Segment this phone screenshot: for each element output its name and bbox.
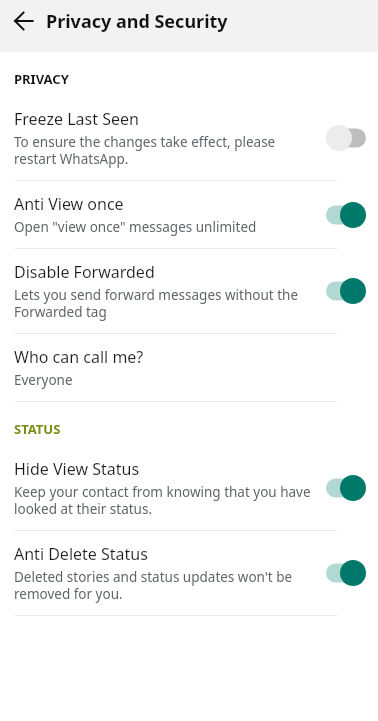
staticText: STATUS xyxy=(14,420,61,438)
button[interactable] xyxy=(326,202,366,228)
button[interactable] xyxy=(326,560,366,586)
button[interactable] xyxy=(326,125,366,151)
staticText: Open "view once" messages unlimited xyxy=(14,218,257,236)
staticText: Lets you send forward messages without t… xyxy=(14,286,318,321)
button[interactable]: Back xyxy=(2,0,44,42)
staticText: Anti View once xyxy=(14,193,124,215)
staticText: Privacy and Security xyxy=(46,9,228,34)
staticText: PRIVACY xyxy=(14,70,69,88)
staticText: Who can call me? xyxy=(14,346,144,368)
staticText: To ensure the changes take effect, pleas… xyxy=(14,133,318,168)
button[interactable]: Anti View once xyxy=(0,181,378,249)
button[interactable]: Anti Delete Status xyxy=(0,531,378,616)
button[interactable] xyxy=(326,278,366,304)
staticText: Deleted stories and status updates won't… xyxy=(14,568,318,603)
staticText: Everyone xyxy=(14,371,73,389)
button[interactable] xyxy=(326,475,366,501)
button[interactable]: Disable Forwarded xyxy=(0,249,378,334)
button[interactable]: Hide View Status xyxy=(0,446,378,531)
staticText: Hide View Status xyxy=(14,458,140,480)
staticText: Keep your contact from knowing that you … xyxy=(14,483,318,518)
button[interactable]: Freeze Last Seen xyxy=(0,96,378,181)
button[interactable]: Who can call me? xyxy=(0,334,378,402)
staticText: Freeze Last Seen xyxy=(14,108,139,130)
staticText: Disable Forwarded xyxy=(14,261,155,283)
staticText: Anti Delete Status xyxy=(14,543,148,565)
